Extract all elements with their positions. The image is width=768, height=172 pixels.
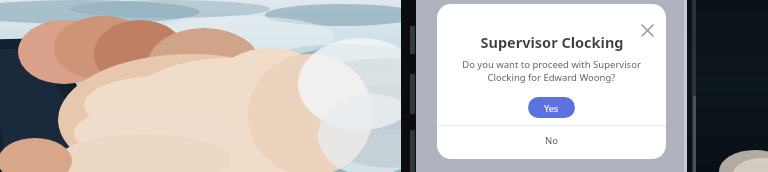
button[interactable]: Close dialog [632, 15, 662, 45]
button[interactable]: Yes [528, 97, 575, 118]
staticText: Do you want to proceed with Supervisor C… [437, 58, 666, 84]
staticText: No [545, 134, 558, 147]
button[interactable]: No [437, 126, 666, 155]
staticText: Yes [544, 102, 559, 114]
staticText: Supervisor Clocking [480, 32, 624, 52]
